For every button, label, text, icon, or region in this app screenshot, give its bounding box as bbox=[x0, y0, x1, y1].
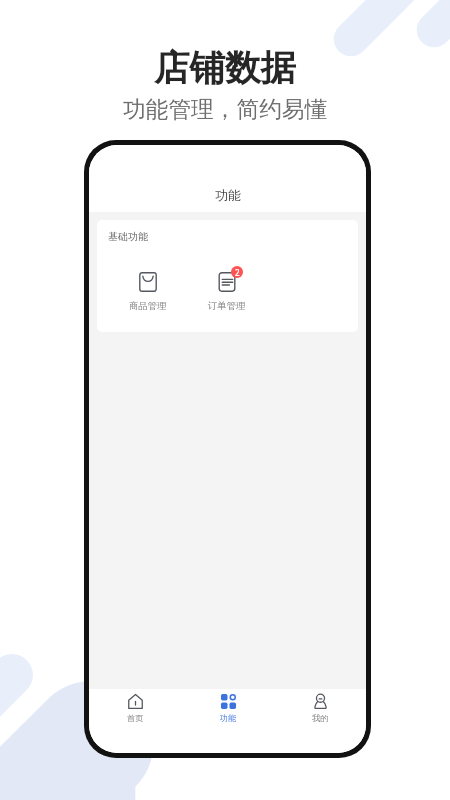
staticText: 2 bbox=[235, 267, 240, 278]
button[interactable]: 商品管理 bbox=[108, 271, 187, 313]
button[interactable]: 功能 bbox=[182, 689, 274, 723]
other: 功能 bbox=[221, 694, 236, 709]
staticText: 功能 bbox=[215, 187, 241, 203]
staticText: 商品管理 bbox=[129, 300, 167, 312]
staticText: 店铺数据 bbox=[154, 46, 296, 91]
other: 首页 bbox=[128, 694, 143, 709]
button[interactable]: 2 bbox=[187, 271, 267, 313]
staticText: 订单管理 bbox=[208, 300, 246, 312]
staticText: 基础功能 bbox=[108, 230, 148, 243]
staticText: 功能管理，简约易懂 bbox=[123, 95, 328, 124]
button[interactable]: 首页 bbox=[89, 689, 182, 723]
staticText: 首页 bbox=[127, 713, 144, 723]
other: 我的 bbox=[313, 694, 328, 709]
button[interactable]: 我的 bbox=[274, 689, 366, 723]
staticText: 我的 bbox=[312, 713, 329, 723]
staticText: 功能 bbox=[220, 713, 237, 723]
